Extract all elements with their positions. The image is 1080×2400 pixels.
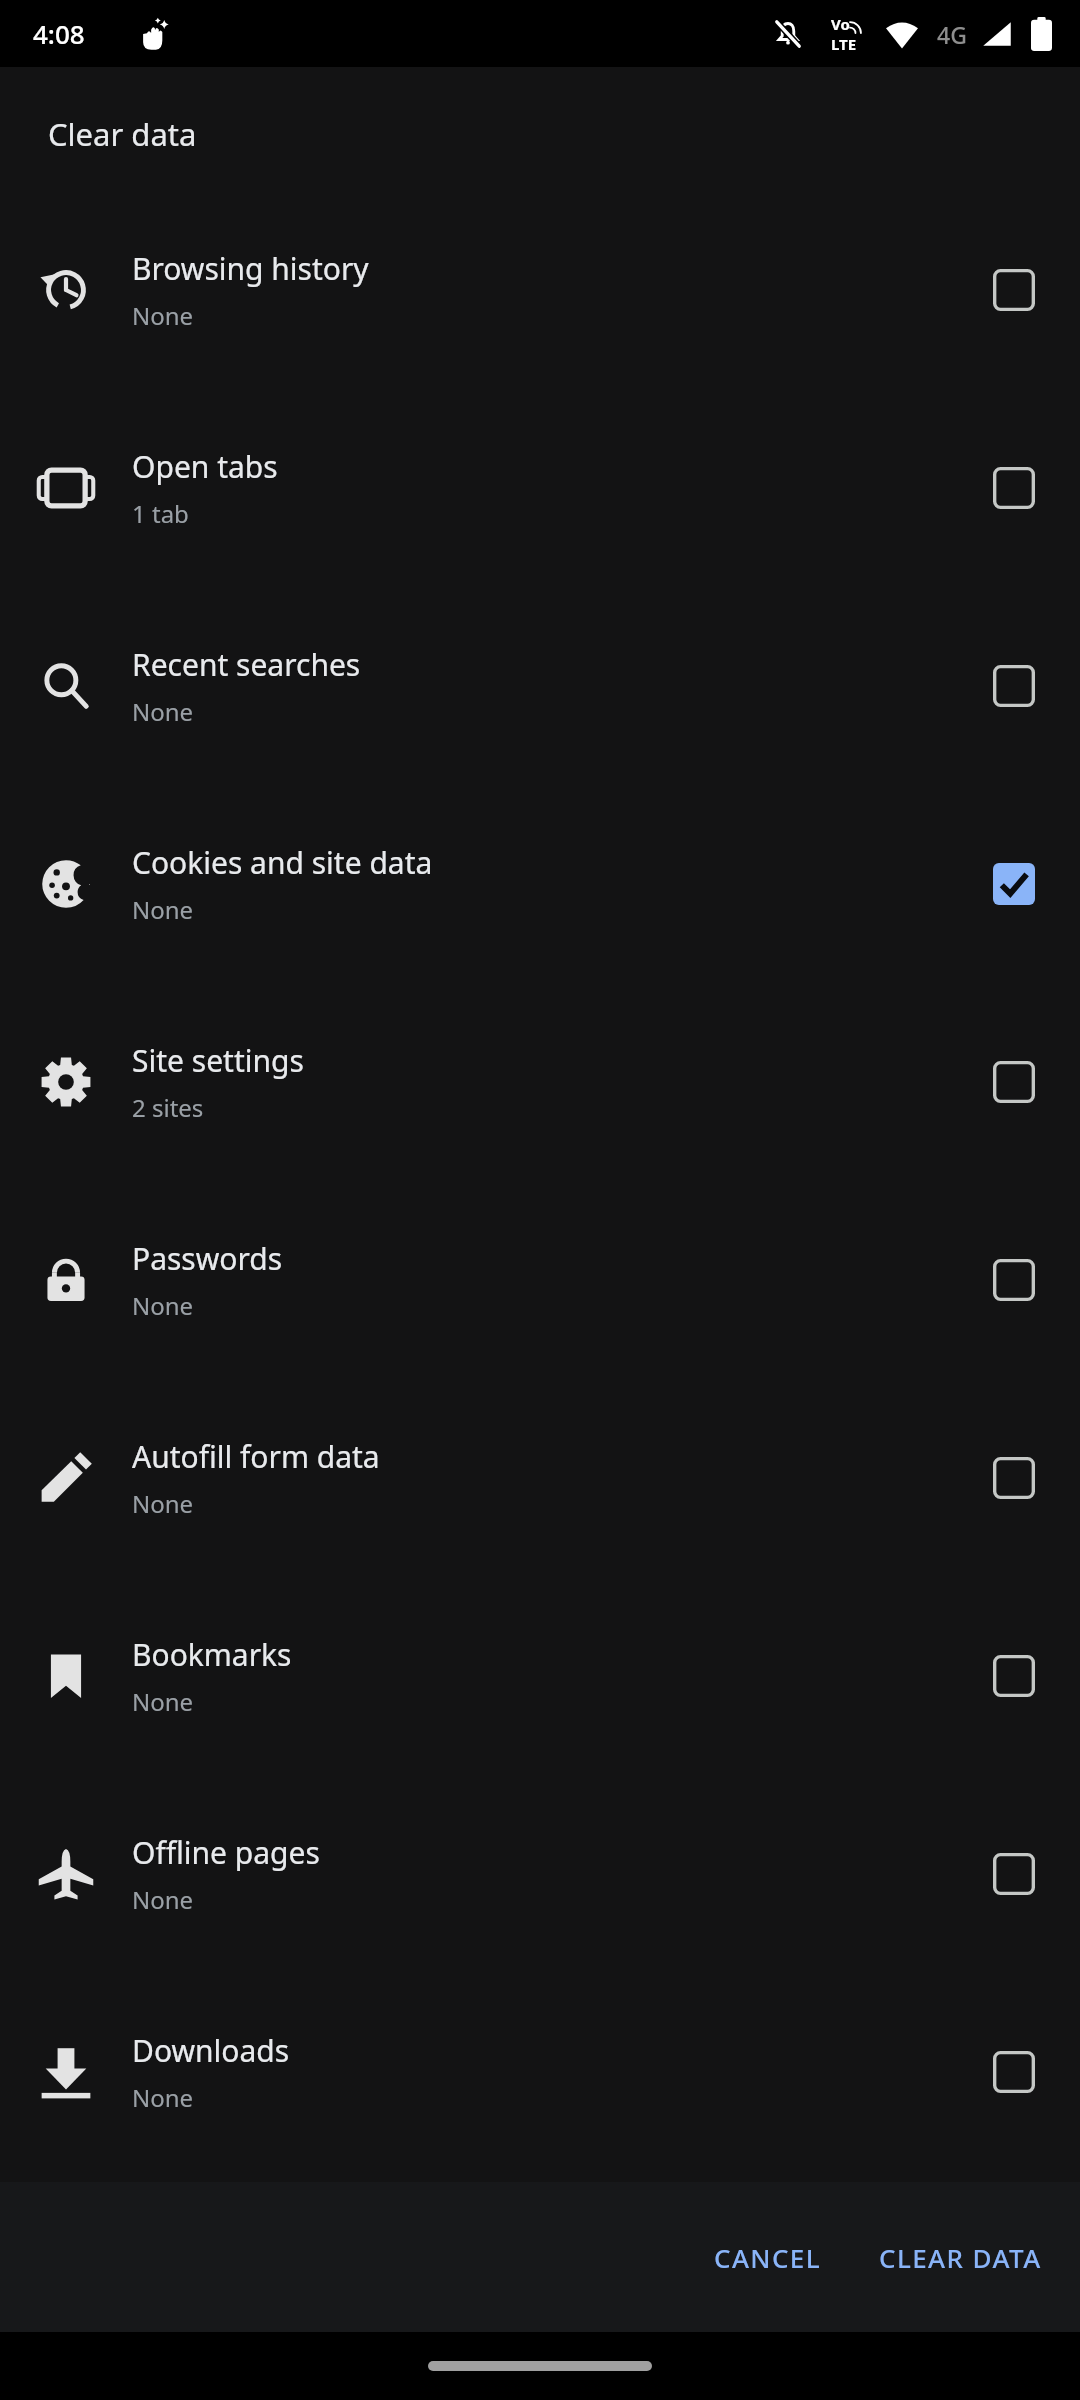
- staticText: Downloads: [132, 2030, 290, 2071]
- staticText: 2 sites: [132, 1091, 204, 1124]
- button[interactable]: Site settings: [0, 983, 1080, 1181]
- staticText: Vo: [831, 14, 850, 34]
- staticText: None: [132, 1883, 194, 1916]
- staticText: Open tabs: [132, 446, 278, 487]
- button[interactable]: Cookies and site data: [976, 846, 1052, 922]
- button[interactable]: Offline pages: [0, 1775, 1080, 1973]
- staticText: Recent searches: [132, 644, 361, 685]
- staticText: None: [132, 695, 194, 728]
- staticText: Offline pages: [132, 1832, 320, 1873]
- button[interactable]: Autofill form data: [0, 1379, 1080, 1577]
- button[interactable]: Site settings: [976, 1044, 1052, 1120]
- staticText: None: [132, 299, 194, 332]
- button[interactable]: Autofill form data: [976, 1440, 1052, 1516]
- button[interactable]: Downloads: [976, 2034, 1052, 2110]
- button[interactable]: Passwords: [976, 1242, 1052, 1318]
- staticText: 4G: [937, 19, 967, 50]
- button[interactable]: Open tabs: [976, 450, 1052, 526]
- staticText: None: [132, 2081, 194, 2114]
- button[interactable]: Cookies and site data: [0, 785, 1080, 983]
- staticText: Bookmarks: [132, 1634, 292, 1675]
- button[interactable]: Browsing history: [0, 191, 1080, 389]
- button[interactable]: CANCEL: [698, 2224, 837, 2291]
- staticText: Clear data: [48, 113, 197, 155]
- button[interactable]: Bookmarks: [0, 1577, 1080, 1775]
- staticText: CLEAR DATA: [879, 2240, 1042, 2275]
- staticText: None: [132, 1289, 194, 1322]
- button[interactable]: Bookmarks: [976, 1638, 1052, 1714]
- button[interactable]: Recent searches: [976, 648, 1052, 724]
- button[interactable]: Passwords: [0, 1181, 1080, 1379]
- button[interactable]: Recent searches: [0, 587, 1080, 785]
- button[interactable]: Downloads: [0, 1973, 1080, 2171]
- staticText: None: [132, 1685, 194, 1718]
- staticText: Autofill form data: [132, 1436, 380, 1477]
- staticText: CANCEL: [714, 2240, 821, 2275]
- button[interactable]: Offline pages: [976, 1836, 1052, 1912]
- button[interactable]: CLEAR DATA: [863, 2224, 1058, 2291]
- staticText: None: [132, 893, 194, 926]
- staticText: LTE: [831, 34, 857, 54]
- staticText: 4:08: [33, 16, 85, 51]
- staticText: Cookies and site data: [132, 842, 433, 883]
- staticText: Site settings: [132, 1040, 304, 1081]
- staticText: None: [132, 1487, 194, 1520]
- staticText: Browsing history: [132, 248, 369, 289]
- button[interactable]: Open tabs: [0, 389, 1080, 587]
- button[interactable]: Browsing history: [976, 252, 1052, 328]
- staticText: 1 tab: [132, 497, 189, 530]
- other: Notification: [138, 18, 170, 50]
- staticText: Passwords: [132, 1238, 283, 1279]
